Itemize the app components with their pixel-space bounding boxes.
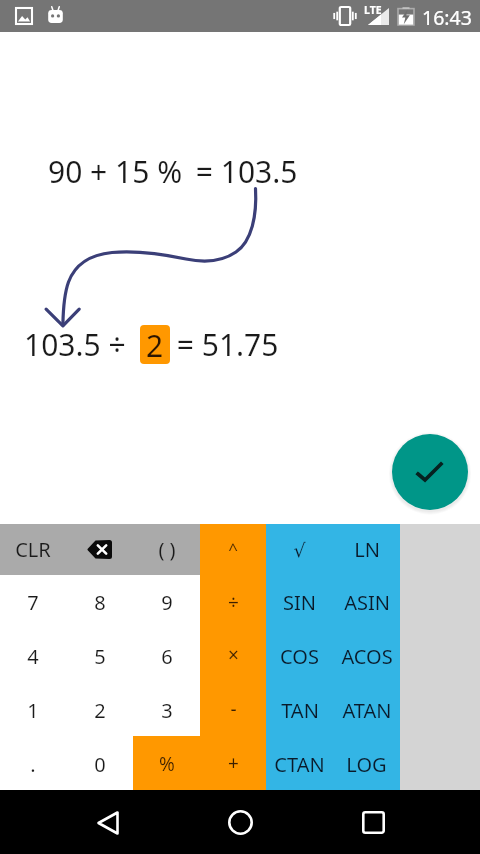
- staticText: 103.5 ÷: [24, 324, 134, 365]
- staticText: CTAN: [274, 751, 325, 778]
- button[interactable]: Back: [68, 790, 148, 854]
- button[interactable]: Recent apps: [333, 790, 413, 854]
- staticText: +: [228, 750, 239, 776]
- button[interactable]: 8: [66, 575, 133, 628]
- button[interactable]: 7: [0, 575, 66, 628]
- button[interactable]: 6: [133, 628, 200, 682]
- staticText: %: [159, 751, 175, 777]
- button[interactable]: 5: [66, 628, 133, 682]
- button[interactable]: ( ): [133, 524, 200, 575]
- button[interactable]: 1: [0, 682, 66, 736]
- staticText: ^: [228, 537, 238, 560]
- staticText: √: [293, 539, 306, 561]
- button[interactable]: 2: [66, 682, 133, 736]
- button[interactable]: ÷: [200, 575, 266, 628]
- button[interactable]: TAN: [266, 682, 333, 736]
- staticText: = 103.5: [188, 151, 298, 192]
- staticText: ACOS: [341, 643, 393, 670]
- staticText: ATAN: [342, 697, 392, 724]
- button[interactable]: ACOS: [333, 628, 400, 682]
- staticText: ( ): [158, 536, 176, 563]
- staticText: 4: [27, 643, 39, 670]
- button[interactable]: CTAN: [266, 736, 333, 790]
- staticText: 3: [161, 697, 173, 724]
- button[interactable]: √: [266, 524, 333, 575]
- button[interactable]: Backspace: [66, 524, 133, 575]
- staticText: -: [230, 696, 237, 722]
- staticText: 1: [27, 697, 39, 724]
- button[interactable]: CLR: [0, 524, 66, 575]
- staticText: ASIN: [344, 589, 390, 616]
- staticText: 2: [94, 697, 106, 724]
- staticText: TAN: [281, 697, 319, 724]
- button[interactable]: SIN: [266, 575, 333, 628]
- button[interactable]: 9: [133, 575, 200, 628]
- staticText: LTE: [364, 3, 382, 17]
- staticText: LN: [354, 536, 380, 563]
- button[interactable]: %: [133, 736, 200, 790]
- staticText: CLR: [15, 536, 51, 563]
- staticText: ÷: [228, 589, 239, 615]
- button[interactable]: LOG: [333, 736, 400, 790]
- staticText: 2: [146, 325, 164, 364]
- staticText: = 51.75: [169, 324, 279, 365]
- button[interactable]: Home: [200, 790, 280, 854]
- staticText: LOG: [346, 751, 387, 778]
- staticText: 8: [94, 589, 106, 616]
- button[interactable]: +: [200, 736, 266, 790]
- staticText: 16:43: [422, 4, 472, 31]
- button[interactable]: Confirm: [392, 434, 468, 510]
- staticText: 0: [94, 751, 106, 778]
- button[interactable]: -: [200, 682, 266, 736]
- staticText: COS: [280, 643, 319, 670]
- button[interactable]: 4: [0, 628, 66, 682]
- staticText: 6: [161, 643, 173, 670]
- button[interactable]: COS: [266, 628, 333, 682]
- staticText: 9: [161, 589, 173, 616]
- button[interactable]: ATAN: [333, 682, 400, 736]
- button[interactable]: ASIN: [333, 575, 400, 628]
- staticText: 5: [94, 643, 106, 670]
- button[interactable]: LN: [333, 524, 400, 575]
- staticText: SIN: [283, 589, 316, 616]
- button[interactable]: .: [0, 736, 66, 790]
- staticText: 90 + 15 %: [48, 151, 183, 192]
- button[interactable]: 0: [66, 736, 133, 790]
- staticText: ×: [228, 642, 239, 668]
- button[interactable]: ^: [200, 524, 266, 575]
- button[interactable]: 3: [133, 682, 200, 736]
- button[interactable]: ×: [200, 628, 266, 682]
- staticText: 7: [27, 589, 39, 616]
- staticText: .: [30, 751, 36, 778]
